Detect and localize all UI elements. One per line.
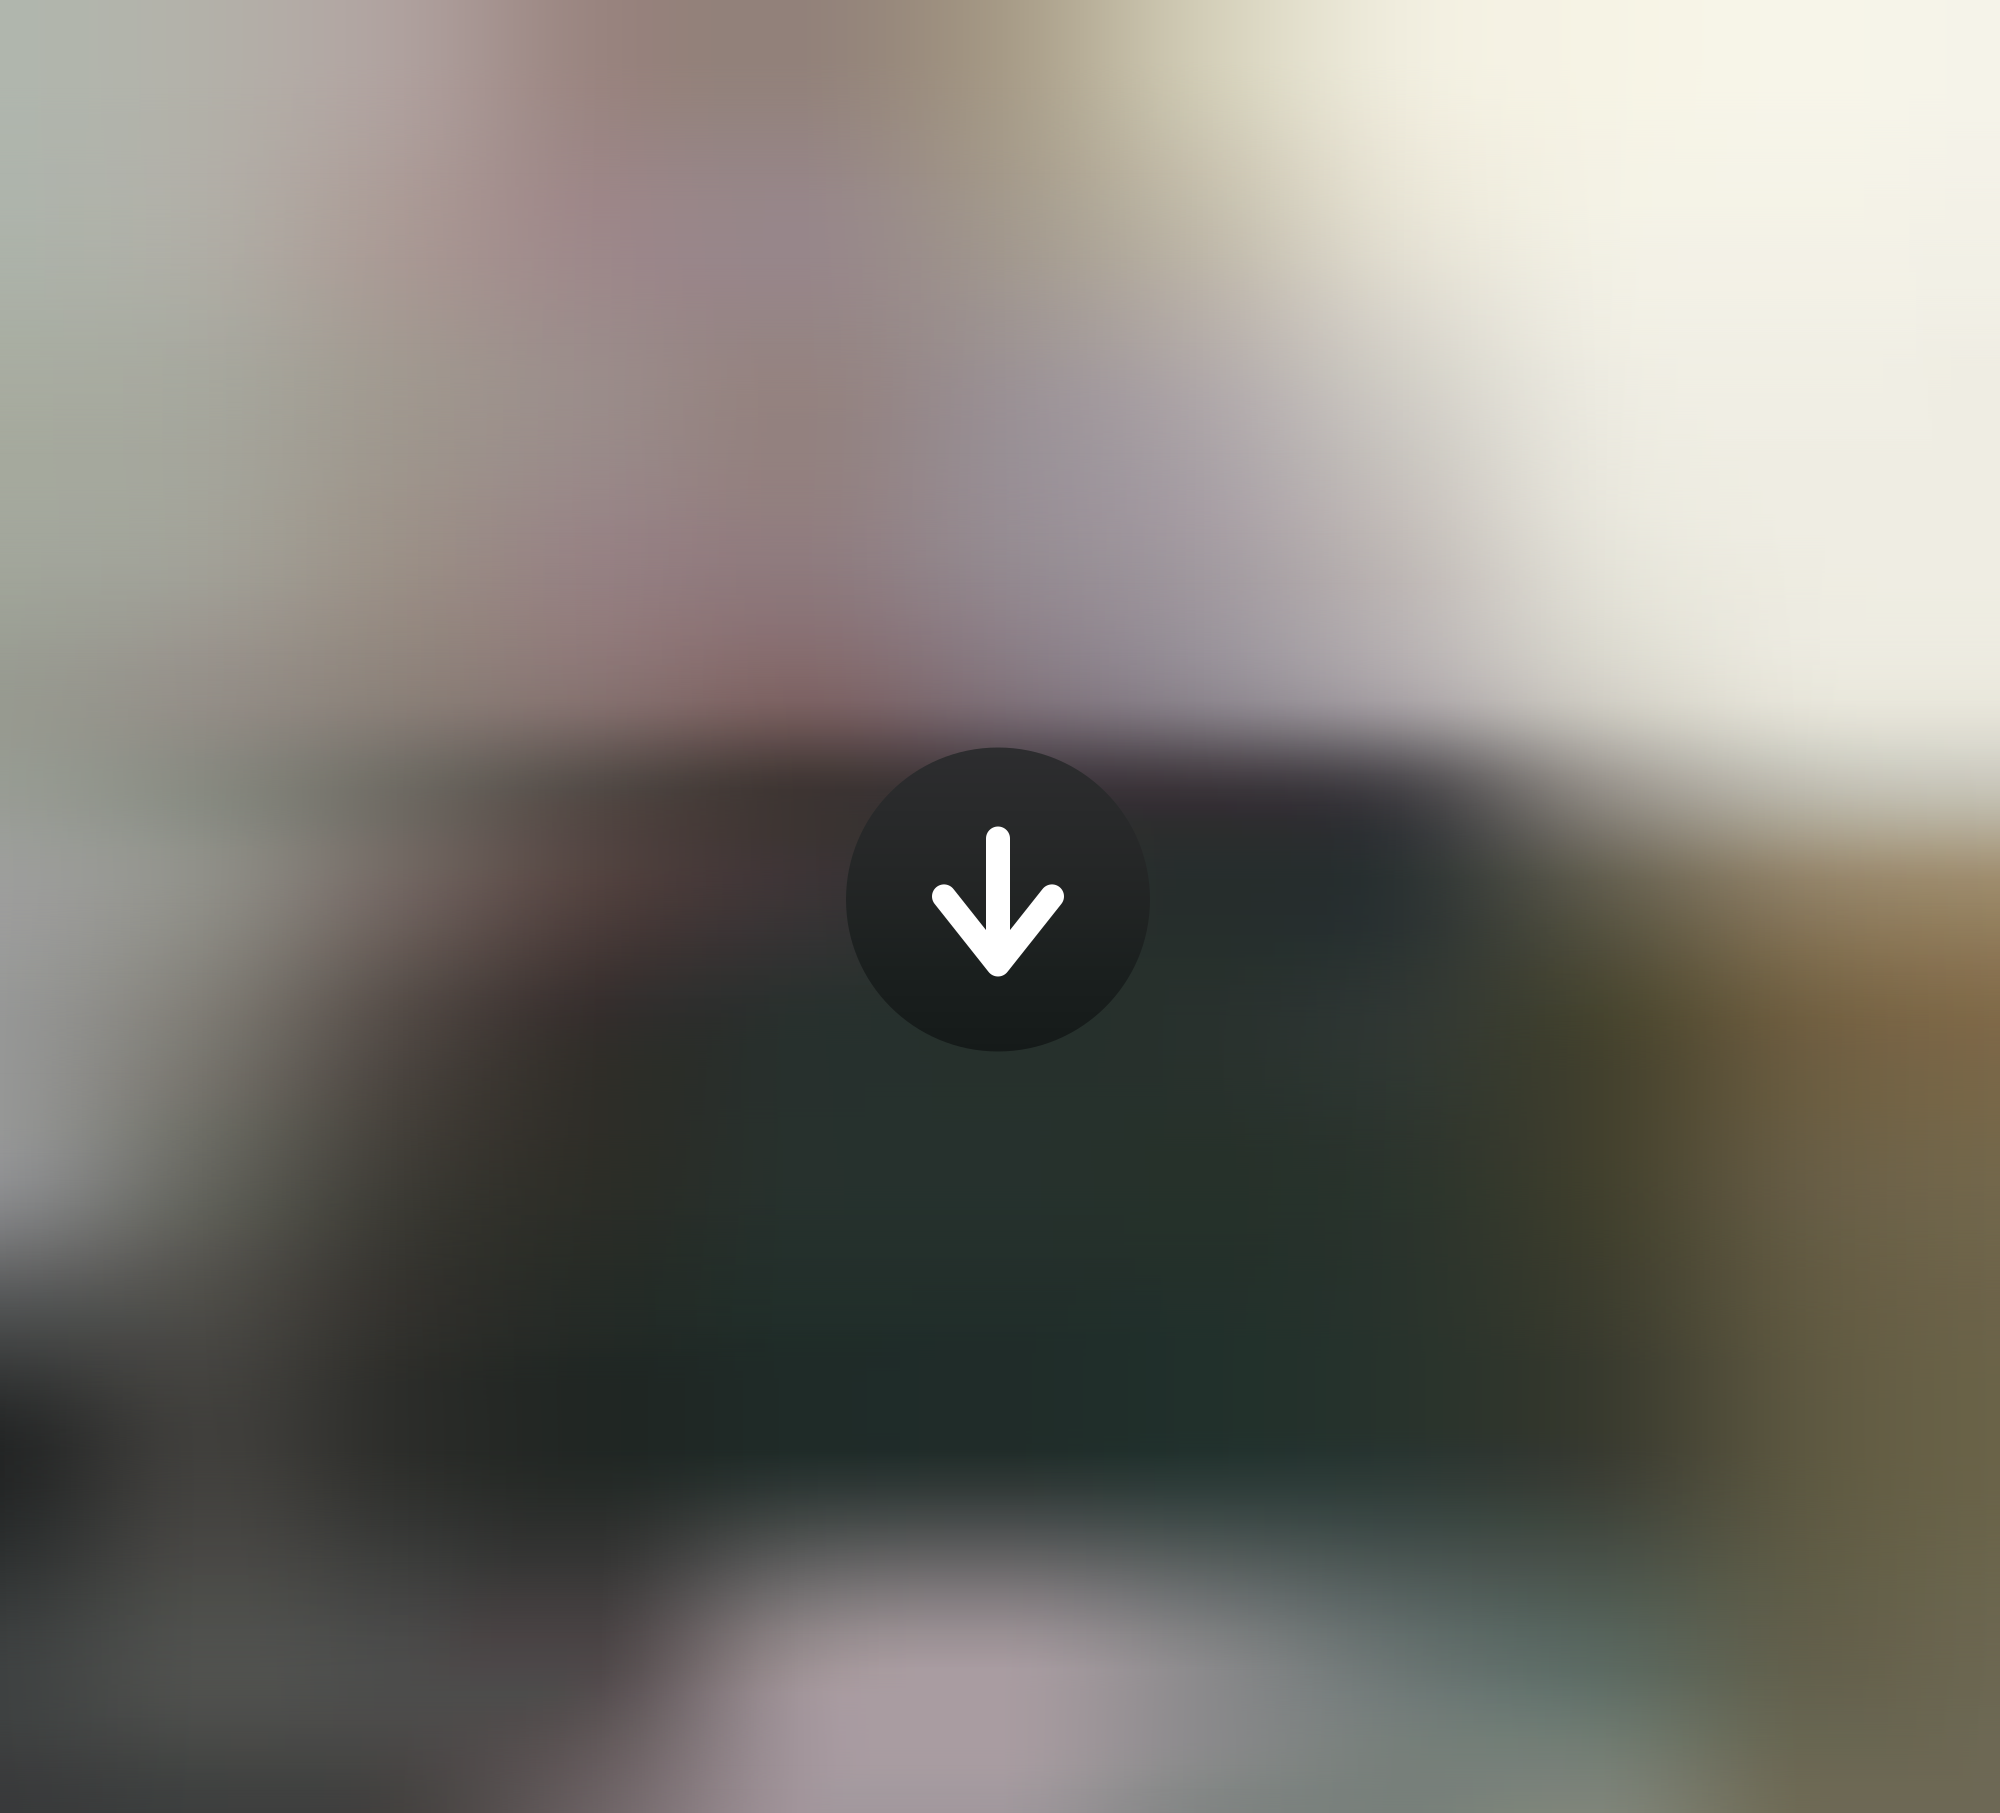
button[interactable]: Scroll down <box>846 747 1150 1051</box>
